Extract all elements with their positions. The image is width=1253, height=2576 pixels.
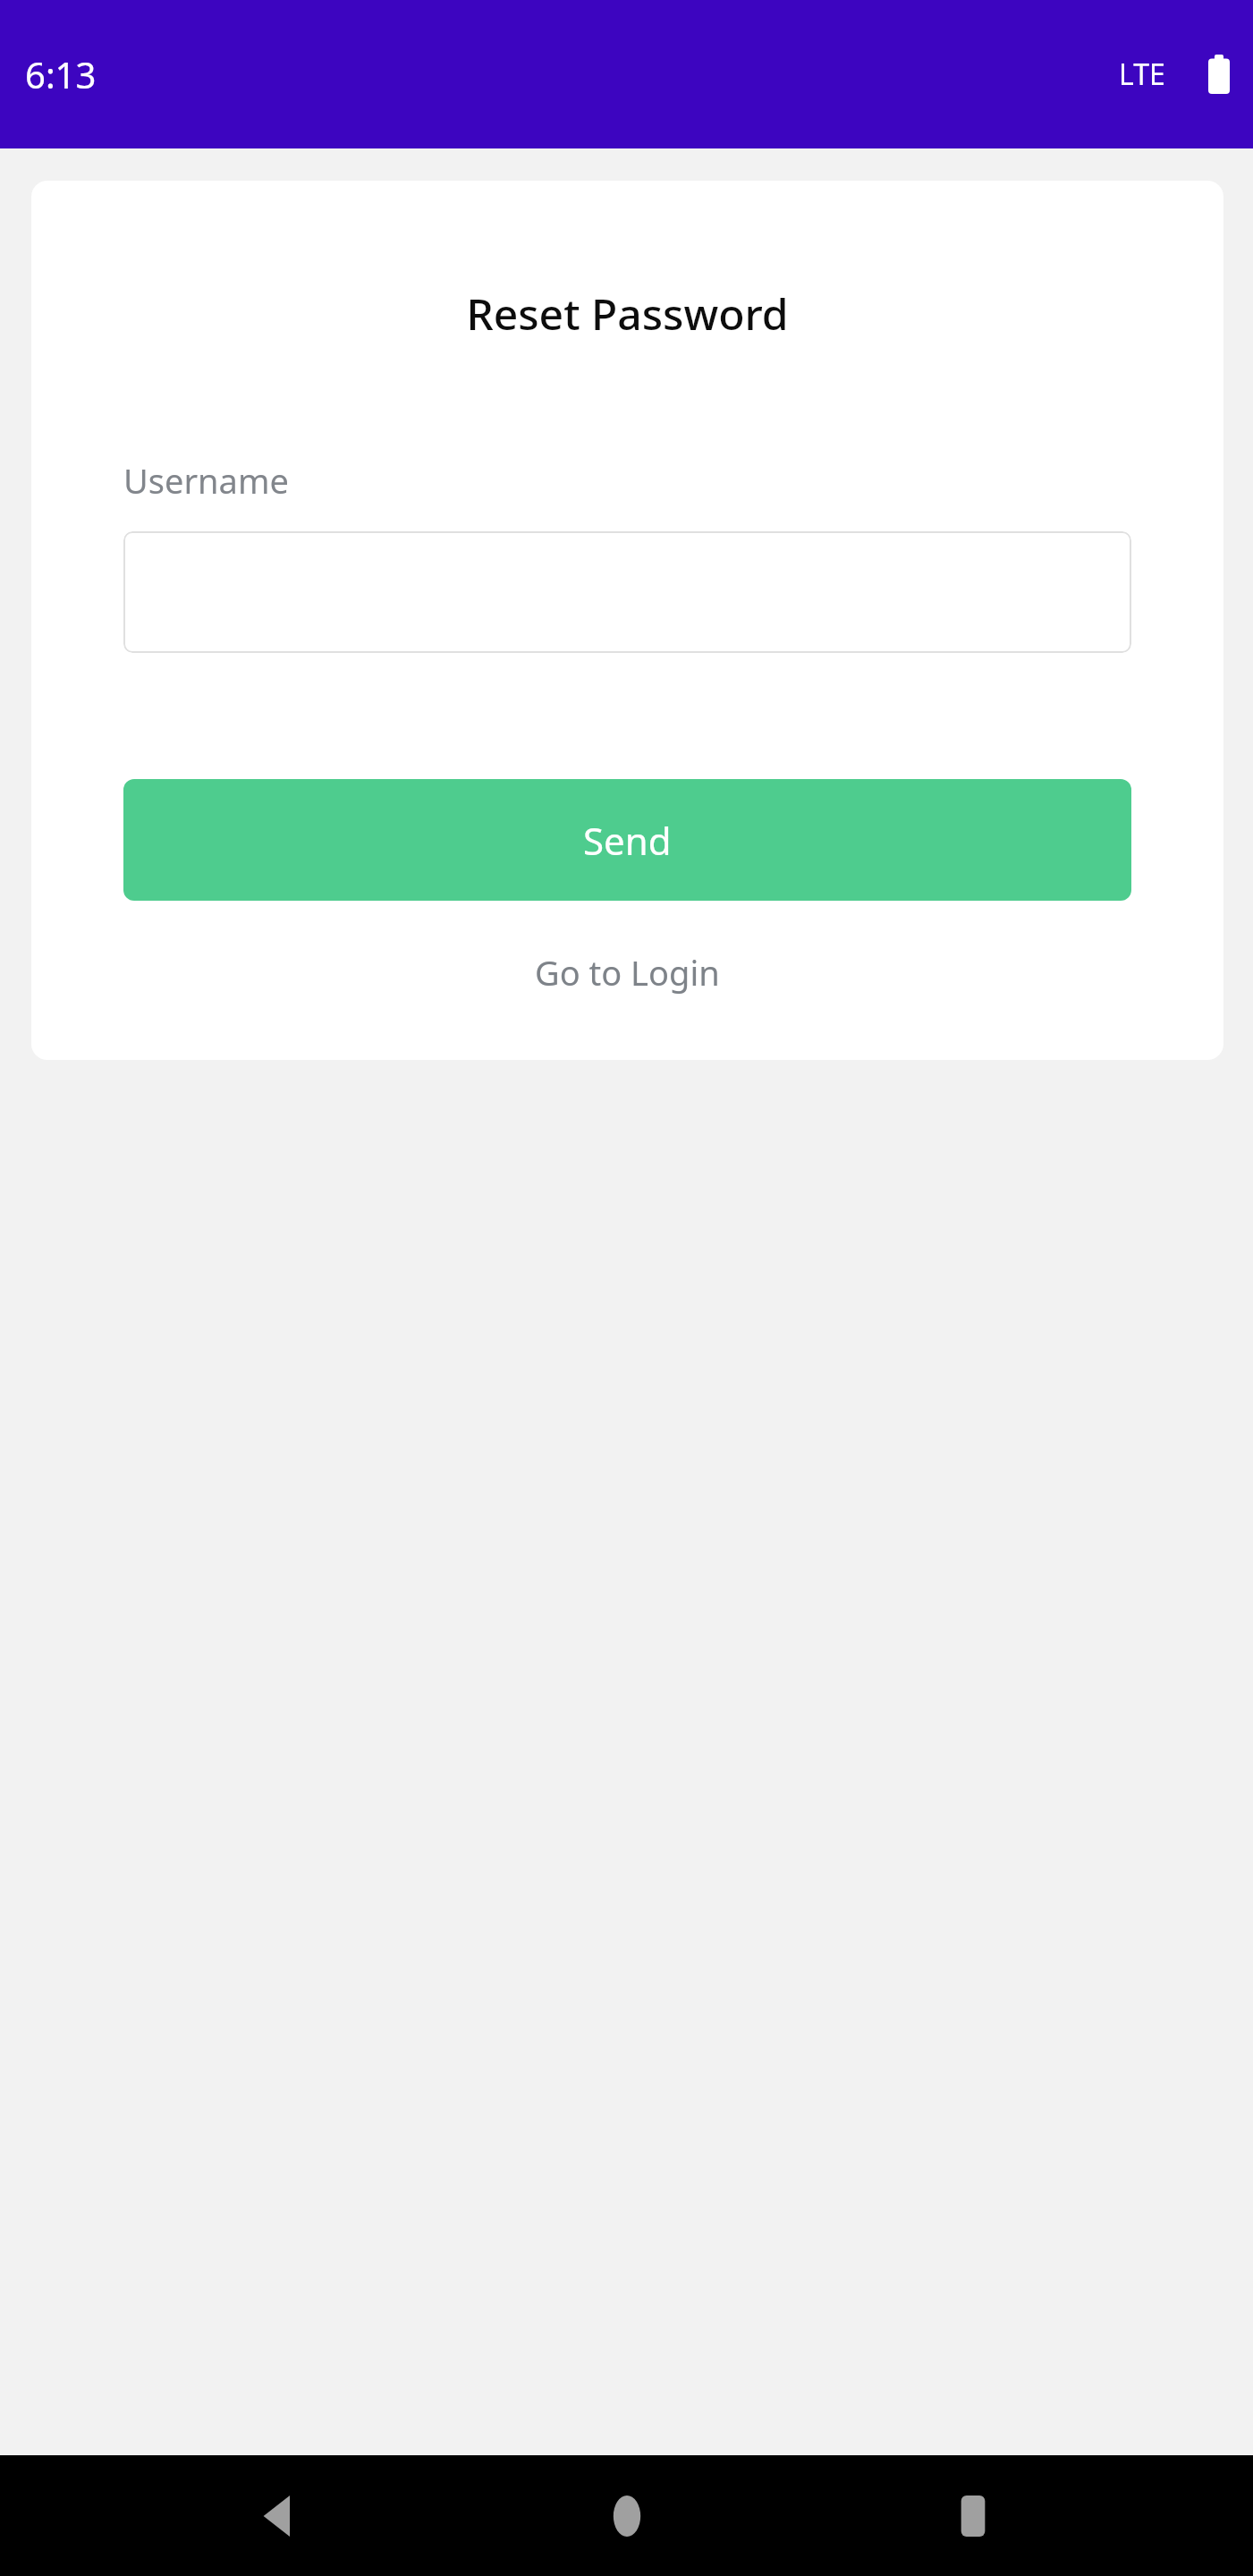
staticText: Send	[583, 815, 672, 866]
staticText: Username	[123, 457, 289, 504]
button[interactable]: Recent apps	[906, 2455, 1040, 2576]
staticText: LTE	[1119, 55, 1165, 94]
button[interactable]: Back	[213, 2455, 347, 2576]
button[interactable]: Home	[560, 2455, 694, 2576]
staticText: 6:13	[25, 50, 97, 98]
staticText: Go to Login	[535, 949, 720, 996]
staticText: Reset Password	[31, 284, 1223, 343]
button[interactable]: Go to Login	[31, 933, 1223, 1012]
button[interactable]: Send	[123, 779, 1131, 901]
button[interactable]	[123, 531, 1131, 653]
